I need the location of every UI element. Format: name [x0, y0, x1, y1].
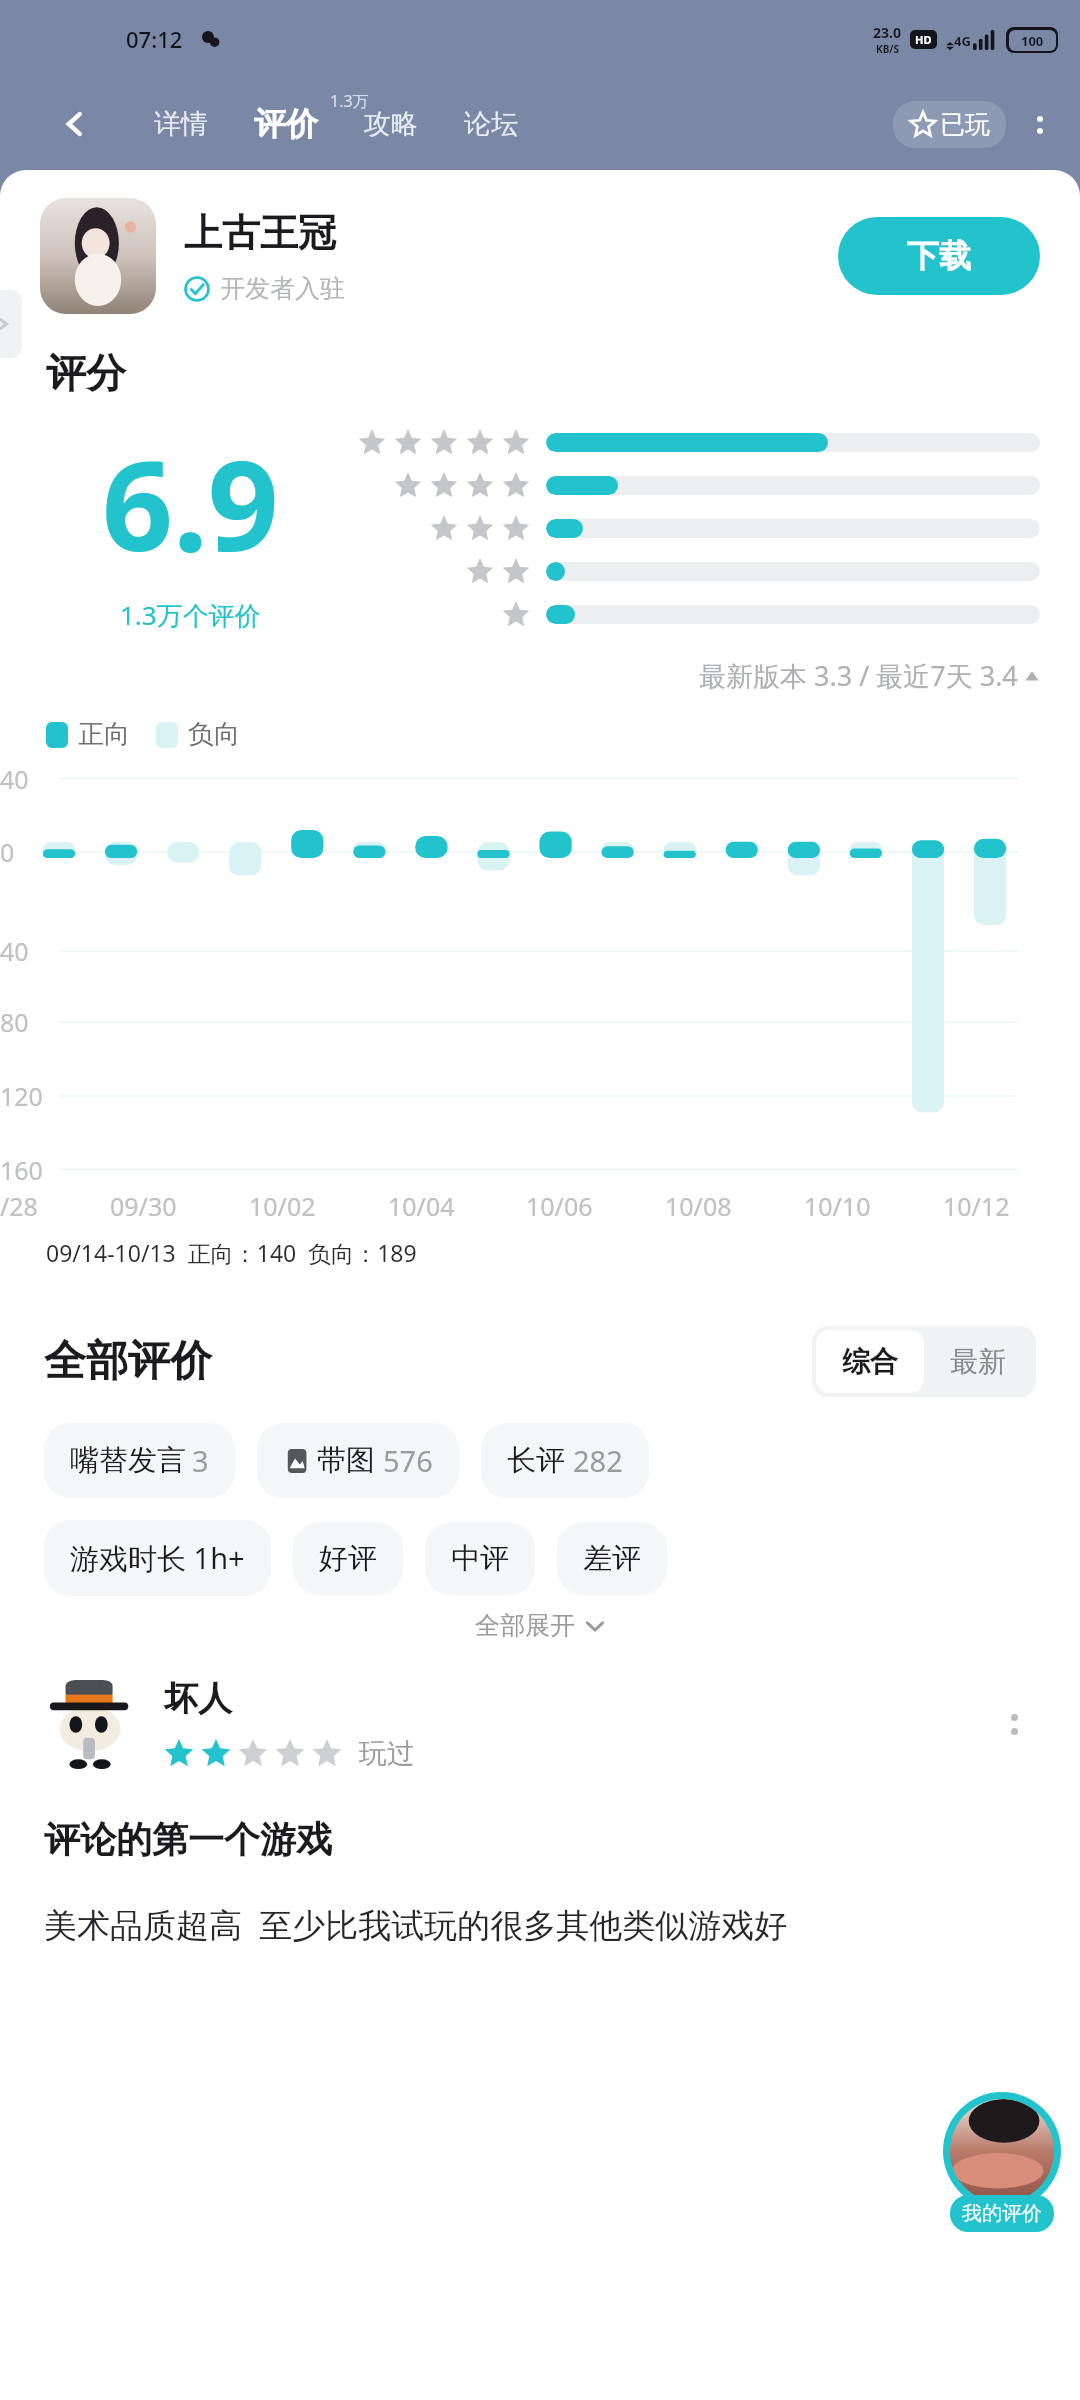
staticText: 正向 — [78, 718, 130, 751]
staticText: 10/04 — [388, 1189, 455, 1223]
staticText: 我的评价 — [962, 2201, 1042, 2226]
staticText: 1.3万个评价 — [120, 597, 261, 633]
staticText: /28 — [0, 1189, 38, 1223]
staticText: 开发者入驻 — [220, 273, 345, 304]
staticText: 23.0 — [873, 23, 901, 42]
button[interactable]: 综合 — [816, 1330, 924, 1393]
staticText: KB/S — [876, 42, 899, 56]
staticText: 详情 — [154, 107, 208, 141]
staticText: 嘴替发言 — [70, 1442, 186, 1479]
staticText: 美术品质超高 至少比我试玩的很多其他类似游戏好 — [44, 1902, 788, 1947]
button[interactable]: 带图 — [257, 1423, 459, 1498]
staticText: 评分 — [46, 348, 126, 398]
button[interactable]: 返回 — [52, 101, 98, 147]
button[interactable]: 中评 — [425, 1522, 535, 1595]
button[interactable]: 游戏时长 1h+ — [44, 1520, 271, 1596]
staticText: 下载 — [907, 236, 971, 276]
staticText: 0 — [0, 835, 15, 869]
staticText: 09/14-10/13 正向：140 负向：189 — [46, 1237, 417, 1268]
staticText: 160 — [0, 1153, 43, 1187]
staticText: 10/02 — [249, 1189, 316, 1223]
button[interactable]: 攻略 — [362, 101, 420, 147]
button[interactable]: 差评 — [557, 1522, 667, 1595]
staticText: 已玩 — [940, 109, 990, 140]
button[interactable]: 已玩 — [893, 101, 1006, 148]
staticText: 40 — [0, 934, 29, 968]
button[interactable]: 详情 — [152, 101, 210, 147]
staticText: 100 — [1021, 32, 1044, 50]
button[interactable]: 更多选项 — [992, 1702, 1036, 1746]
staticText: 游戏时长 1h+ — [70, 1538, 245, 1578]
staticText: HD — [915, 32, 932, 47]
staticText: 带图 — [317, 1442, 375, 1479]
button[interactable]: 论坛 — [462, 101, 520, 147]
staticText: 10/08 — [665, 1189, 732, 1223]
staticText: 最新 — [950, 1344, 1006, 1379]
button[interactable]: 全部展开 — [0, 1610, 1080, 1641]
staticText: 评论的第一个游戏 — [44, 1817, 332, 1862]
staticText: 长评 — [507, 1442, 565, 1479]
staticText: 10/06 — [526, 1189, 593, 1223]
button[interactable]: 长评 — [481, 1423, 649, 1498]
staticText: 玩过 — [359, 1736, 415, 1771]
staticText: 10/10 — [804, 1189, 871, 1223]
staticText: 282 — [573, 1441, 623, 1480]
button[interactable]: 评价 — [252, 98, 320, 150]
staticText: 中评 — [451, 1540, 509, 1577]
staticText: 论坛 — [464, 107, 518, 141]
staticText: 负向 — [188, 718, 240, 751]
staticText: 4G — [954, 32, 971, 50]
button[interactable]: 最新 — [924, 1330, 1032, 1393]
staticText: 差评 — [583, 1540, 641, 1577]
button[interactable]: 好评 — [293, 1522, 403, 1595]
staticText: 80 — [0, 1005, 29, 1039]
staticText: 07:12 — [126, 24, 183, 54]
button[interactable]: 上古王冠 — [40, 198, 1040, 314]
staticText: 10/12 — [943, 1189, 1010, 1223]
staticText: 坏人 — [164, 1677, 232, 1720]
staticText: 攻略 — [364, 107, 418, 141]
staticText: 40 — [0, 762, 29, 796]
staticText: 6.9 — [102, 418, 279, 587]
button[interactable]: 展开 — [0, 290, 22, 358]
staticText: 综合 — [842, 1344, 898, 1379]
button[interactable]: 我的评价 — [940, 2092, 1064, 2232]
button[interactable]: 更多 — [1018, 103, 1062, 147]
staticText: 120 — [0, 1079, 43, 1113]
button[interactable]: 下载 — [838, 217, 1040, 295]
staticText: 576 — [383, 1441, 433, 1480]
staticText: 评价 — [254, 104, 318, 144]
staticText: 上古王冠 — [184, 209, 336, 257]
staticText: 3 — [192, 1441, 209, 1480]
staticText: 好评 — [319, 1540, 377, 1577]
button[interactable]: 嘴替发言 — [44, 1423, 235, 1498]
staticText: 09/30 — [110, 1189, 177, 1223]
staticText: 最新版本 3.3 / 最近7天 3.4 — [699, 657, 1018, 694]
staticText: 全部展开 — [475, 1610, 575, 1641]
staticText: 1.3万 — [330, 90, 369, 112]
staticText: 全部评价 — [44, 1335, 212, 1388]
